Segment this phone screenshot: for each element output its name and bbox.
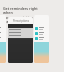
staticText: your prescription is ready <box>3 15 38 24</box>
staticText: Get reminders right when <box>3 6 38 15</box>
staticText: Prescriptions <box>13 19 29 23</box>
button[interactable]: Prescriptions <box>8 17 33 63</box>
